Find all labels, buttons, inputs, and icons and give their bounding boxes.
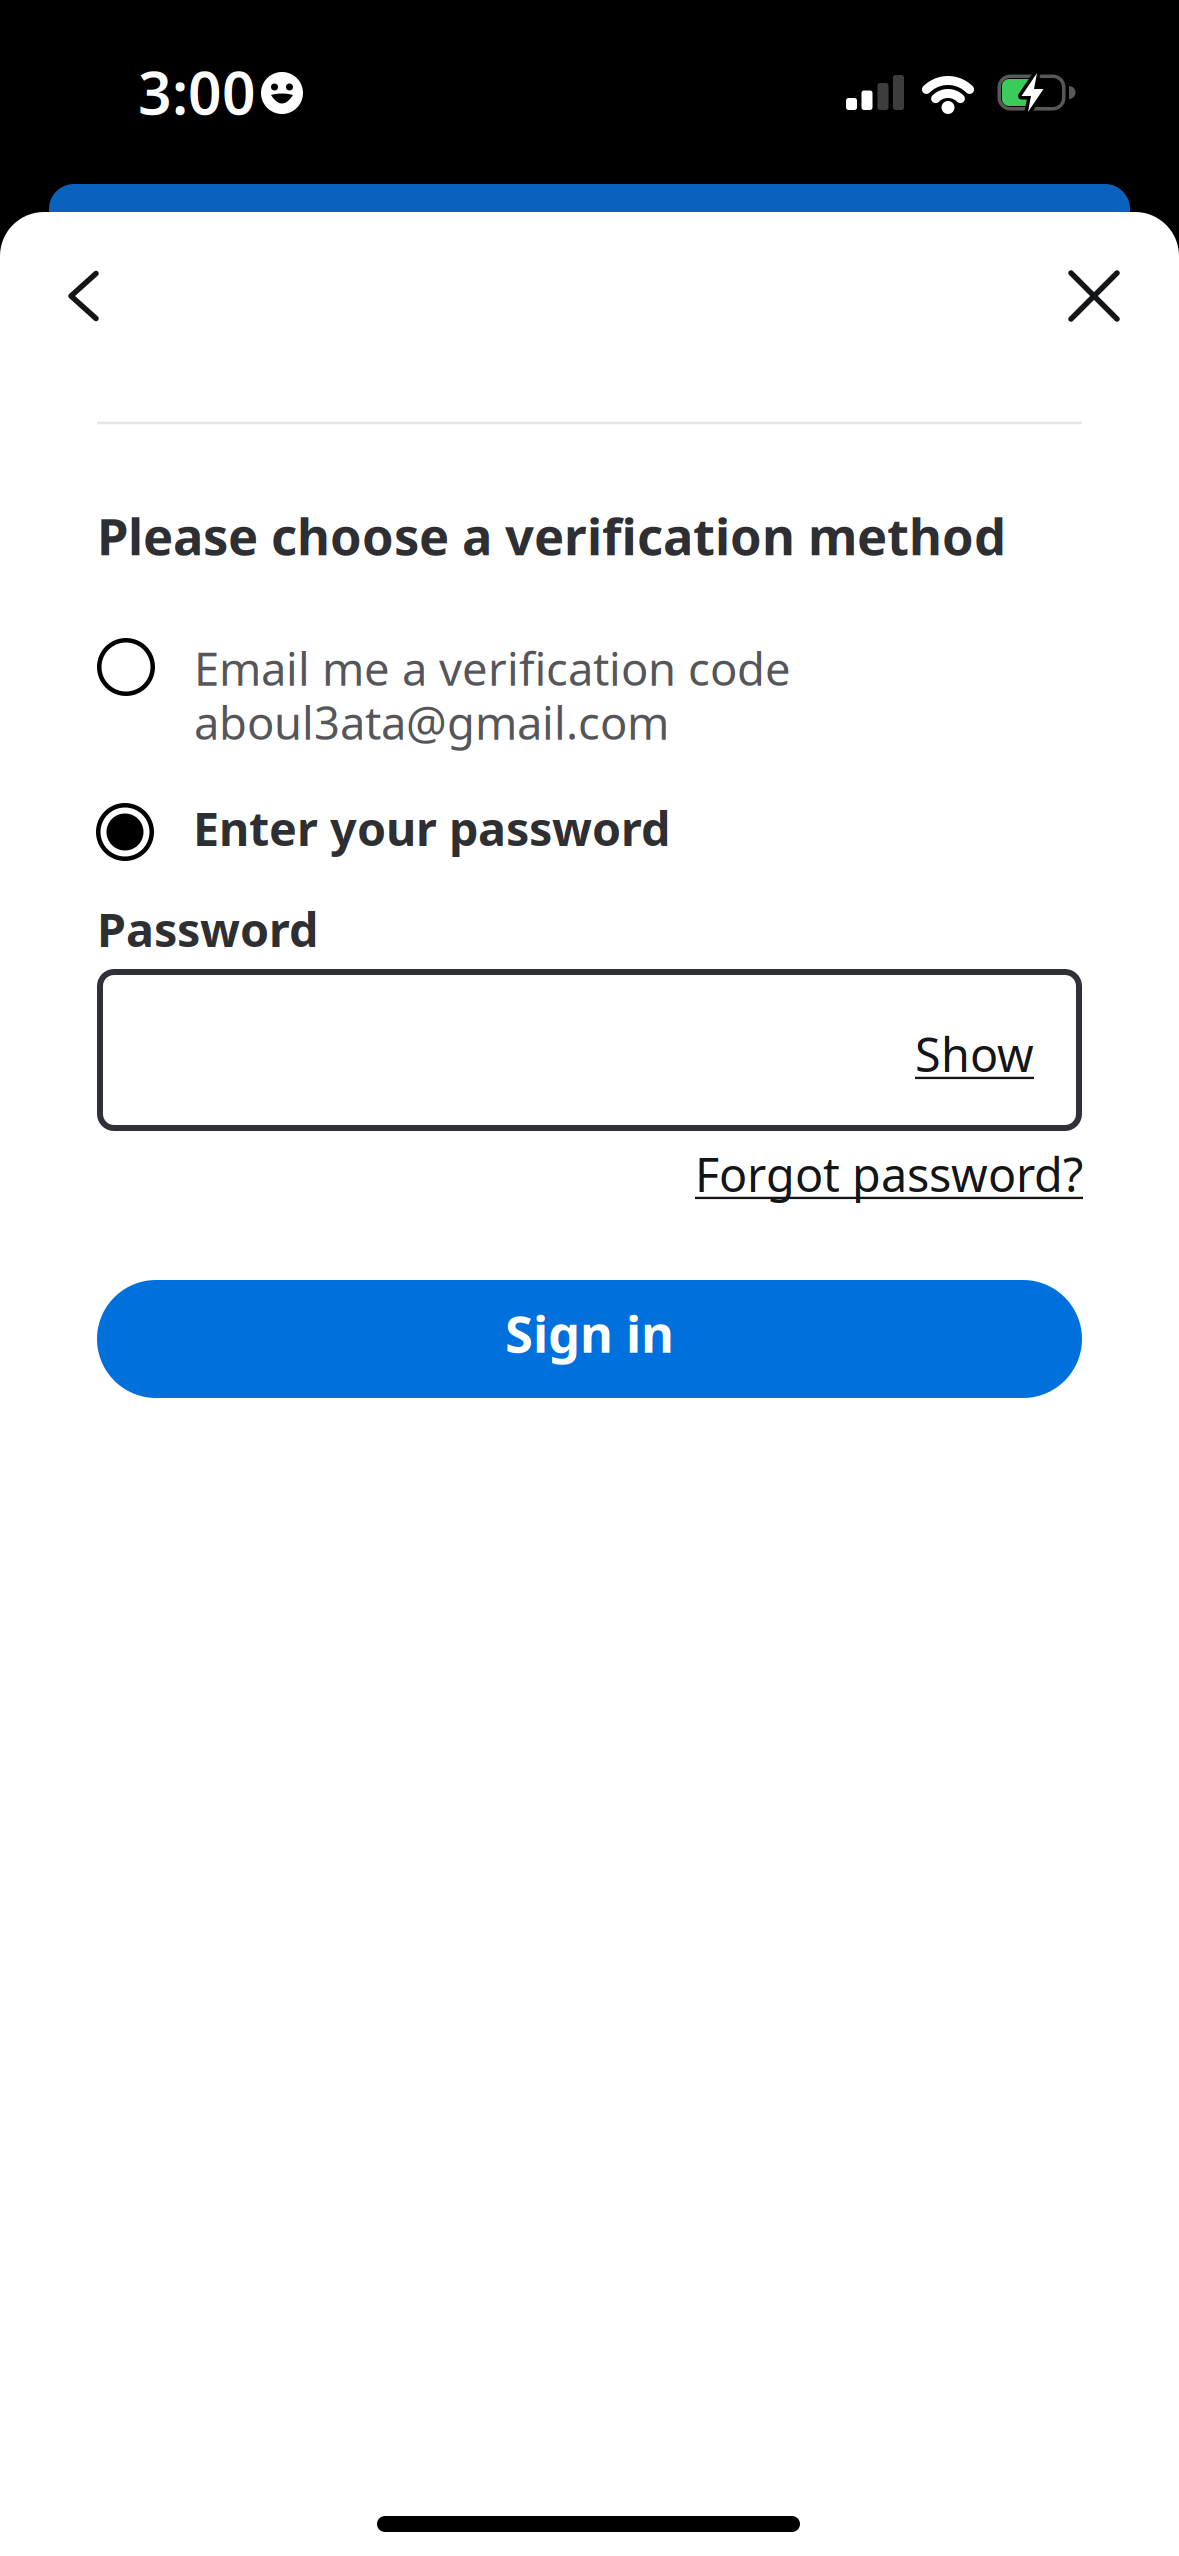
staticText: Email me a verification code (194, 638, 791, 698)
button[interactable]: Show (915, 1023, 1034, 1085)
staticText: Password (97, 898, 318, 960)
button[interactable]: Enter your password (96, 803, 1081, 865)
staticText: Show (915, 1023, 1034, 1085)
button[interactable]: Sign in (97, 1280, 1082, 1398)
button[interactable]: Forgot password? (695, 1143, 1083, 1205)
staticText: Enter your password (193, 797, 670, 859)
staticText: aboul3ata@gmail.com (194, 692, 669, 752)
button[interactable]: Email me a verification code (97, 638, 1082, 758)
staticText: 3:00 (138, 53, 256, 131)
button[interactable] (54, 261, 114, 331)
staticText: Forgot password? (695, 1143, 1083, 1205)
staticText: Sign in (505, 1299, 674, 1367)
staticText: Please choose a verification method (97, 502, 1006, 569)
button[interactable] (1059, 261, 1129, 331)
button[interactable] (97, 969, 1082, 1131)
